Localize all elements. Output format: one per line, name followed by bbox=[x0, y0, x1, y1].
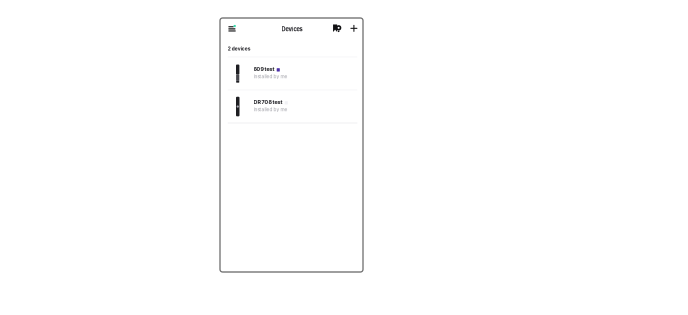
staticText: 2 devices bbox=[228, 46, 251, 51]
button[interactable]: DR708 test bbox=[220, 90, 363, 123]
staticText: Devices bbox=[282, 26, 303, 33]
button[interactable]: Nearby devices bbox=[332, 22, 343, 35]
button[interactable]: 609 test bbox=[220, 57, 363, 90]
button[interactable]: Add device bbox=[348, 22, 359, 35]
staticText: Installed by me bbox=[254, 107, 288, 112]
staticText: 609 test bbox=[254, 66, 275, 72]
button[interactable]: Filter devices bbox=[227, 22, 238, 35]
staticText: DR708 test bbox=[254, 99, 283, 105]
staticText: Installed by me bbox=[254, 74, 288, 79]
